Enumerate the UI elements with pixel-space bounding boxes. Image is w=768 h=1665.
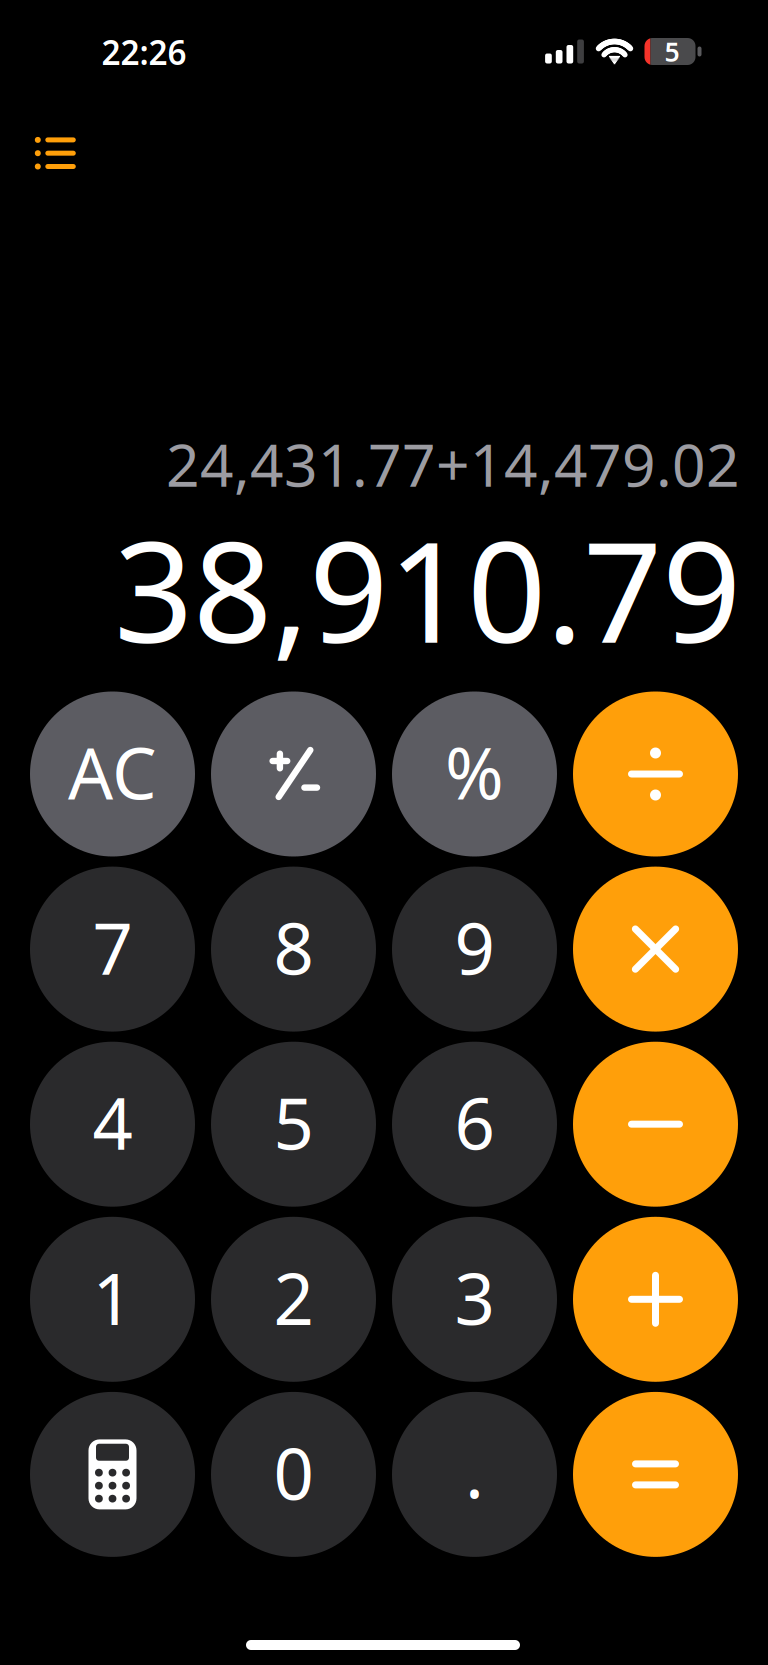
- staticText: %: [445, 725, 504, 819]
- staticText: 1: [92, 1251, 132, 1344]
- button[interactable]: Divide: [573, 691, 738, 856]
- button[interactable]: Calculator modes: [30, 1392, 195, 1557]
- staticText: 8: [273, 900, 313, 994]
- button[interactable]: Subtract: [573, 1042, 738, 1207]
- staticText: .: [465, 1424, 484, 1518]
- button[interactable]: 7: [30, 867, 195, 1032]
- staticText: 4: [92, 1075, 132, 1169]
- button[interactable]: 3: [392, 1217, 557, 1382]
- button[interactable]: 2: [211, 1217, 376, 1382]
- button[interactable]: .: [392, 1392, 557, 1557]
- button[interactable]: 4: [30, 1042, 195, 1207]
- button[interactable]: Equals: [573, 1392, 738, 1557]
- staticText: 38,910.79: [114, 497, 741, 681]
- staticText: AC: [68, 725, 157, 819]
- staticText: 0: [273, 1426, 313, 1519]
- button[interactable]: History: [1, 112, 102, 194]
- button[interactable]: 9: [392, 867, 557, 1032]
- staticText: 9: [454, 900, 494, 994]
- button[interactable]: 8: [211, 867, 376, 1032]
- staticText: 22:26: [101, 30, 186, 74]
- button[interactable]: Plus minus: [211, 691, 376, 856]
- staticText: 2: [273, 1251, 313, 1344]
- button[interactable]: 6: [392, 1042, 557, 1207]
- button[interactable]: Multiply: [573, 867, 738, 1032]
- button[interactable]: 5: [211, 1042, 376, 1207]
- staticText: 7: [92, 900, 132, 994]
- staticText: 3: [454, 1251, 494, 1344]
- button[interactable]: 1: [30, 1217, 195, 1382]
- staticText: 5: [273, 1075, 313, 1169]
- button[interactable]: AC: [30, 691, 195, 856]
- staticText: 5: [664, 34, 679, 69]
- button[interactable]: 0: [211, 1392, 376, 1557]
- staticText: 24,431.77+14,479.02: [166, 425, 740, 503]
- button[interactable]: Add: [573, 1217, 738, 1382]
- staticText: 6: [454, 1075, 494, 1169]
- button[interactable]: %: [392, 691, 557, 856]
